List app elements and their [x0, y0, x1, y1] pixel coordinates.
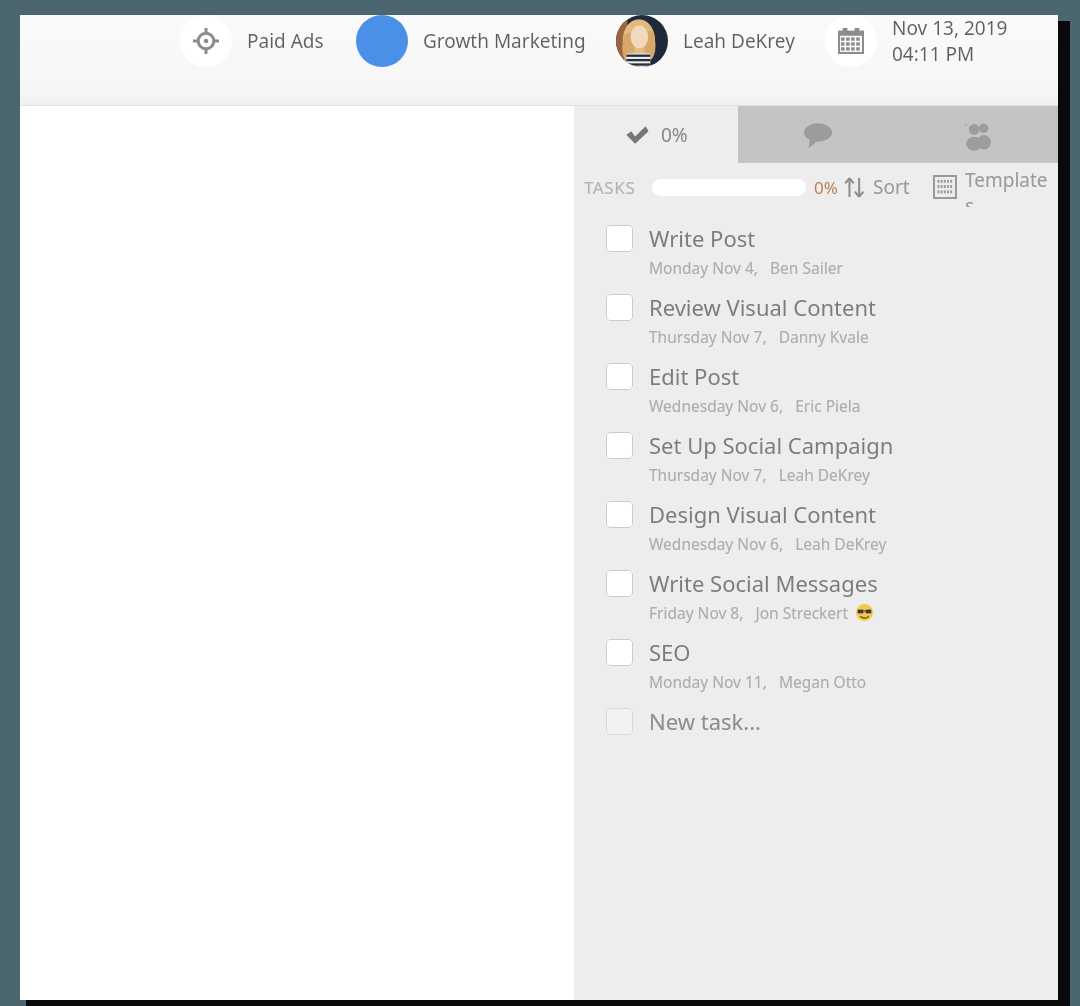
- button[interactable]: Leah DeKrey avatar: [616, 15, 668, 67]
- button[interactable]: Complete Design Visual Content: [606, 501, 633, 528]
- staticText: Paid Ads: [247, 28, 324, 54]
- button[interactable]: Comments: [738, 106, 898, 163]
- staticText: Nov 13, 2019 04:11 PM: [892, 15, 1042, 67]
- button[interactable]: New task...: [574, 706, 1058, 736]
- staticText: Design Visual Content: [649, 499, 876, 529]
- button[interactable]: Sort: [838, 170, 916, 204]
- staticText: Monday Nov 4, Ben Sailer: [649, 257, 843, 278]
- button[interactable]: 0%: [574, 106, 738, 163]
- button[interactable]: Complete Write Social Messages: [574, 568, 1058, 637]
- staticText: Leah DeKrey: [683, 28, 795, 54]
- button[interactable]: Complete Design Visual Content: [574, 499, 1058, 568]
- staticText: Set Up Social Campaign: [649, 430, 894, 460]
- button[interactable]: Complete Edit Post: [606, 363, 633, 390]
- staticText: Write Social Messages: [649, 568, 878, 598]
- staticText: Templates: [965, 167, 1048, 207]
- staticText: Monday Nov 11, Megan Otto: [649, 671, 867, 692]
- button[interactable]: Growth Marketing campaign: [356, 15, 408, 67]
- button[interactable]: Date and time: [825, 15, 877, 67]
- button[interactable]: Complete Set Up Social Campaign: [606, 432, 633, 459]
- button[interactable]: Complete Write Social Messages: [606, 570, 633, 597]
- button[interactable]: People: [898, 106, 1058, 163]
- button[interactable]: Complete SEO: [574, 637, 1058, 706]
- staticText: Review Visual Content: [649, 292, 876, 322]
- staticText: TASKS: [584, 176, 636, 199]
- staticText: Write Post: [649, 223, 756, 253]
- staticText: Wednesday Nov 6, Leah DeKrey: [649, 533, 887, 554]
- staticText: SEO: [649, 637, 691, 667]
- staticText: 0%: [661, 122, 688, 148]
- button[interactable]: Complete Edit Post: [574, 361, 1058, 430]
- button[interactable]: Complete Write Post: [606, 225, 633, 252]
- button[interactable]: Complete Write Post: [574, 223, 1058, 292]
- staticText: Sort: [873, 174, 910, 200]
- button[interactable]: Complete Set Up Social Campaign: [574, 430, 1058, 499]
- staticText: Wednesday Nov 6, Eric Piela: [649, 395, 861, 416]
- staticText: Thursday Nov 7, Leah DeKrey: [649, 464, 870, 485]
- staticText: Friday Nov 8, Jon Streckert: [649, 602, 849, 623]
- button[interactable]: Complete SEO: [606, 639, 633, 666]
- staticText: Thursday Nov 7, Danny Kvale: [649, 326, 869, 347]
- staticText: 0%: [814, 176, 838, 199]
- staticText: Edit Post: [649, 361, 740, 391]
- button[interactable]: Templates: [930, 163, 1052, 211]
- staticText: Growth Marketing: [423, 28, 586, 54]
- staticText: New task...: [649, 706, 761, 736]
- button[interactable]: Complete Review Visual Content: [606, 294, 633, 321]
- button[interactable]: Complete Review Visual Content: [574, 292, 1058, 361]
- button[interactable]: Paid Ads project: [180, 15, 232, 67]
